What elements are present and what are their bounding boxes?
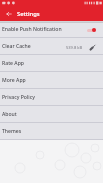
staticText: Themes [2,128,22,135]
staticText: Rate App [2,60,24,67]
staticText: Enable Push Notification [2,26,62,33]
button[interactable]: Enable Push Notification [0,21,103,38]
button[interactable]: Toggle push notification [87,27,96,33]
staticText: 539.8 kB [66,45,82,50]
button[interactable]: Privacy Policy [0,89,103,106]
button[interactable]: More App [0,72,103,89]
staticText: About [2,111,17,118]
staticText: More App [2,77,26,84]
button[interactable]: Themes [0,123,103,140]
staticText: Settings [17,10,40,18]
button[interactable]: Clear Cache [0,38,103,55]
staticText: Privacy Policy [2,94,35,101]
staticText: Clear Cache [2,43,31,50]
button[interactable]: Back [2,7,15,20]
button[interactable]: Rate App [0,55,103,72]
button[interactable]: Clear cache [88,43,96,51]
button[interactable]: About [0,106,103,123]
